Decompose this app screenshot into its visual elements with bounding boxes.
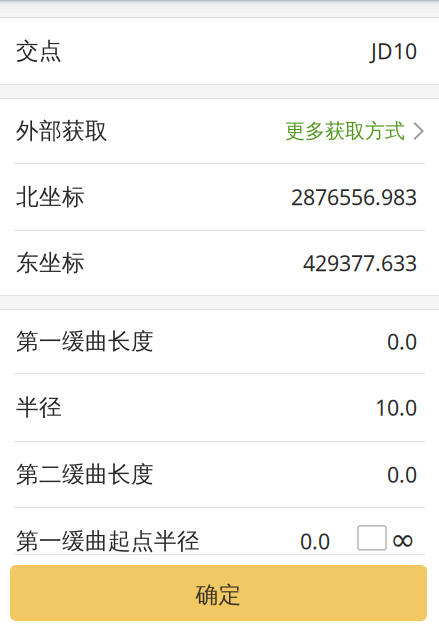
staticText: 北坐标	[16, 183, 85, 211]
button[interactable]: 半径	[0, 374, 439, 441]
staticText: 429377.633	[303, 249, 417, 277]
button[interactable]: 第一缓曲长度	[0, 310, 439, 373]
staticText: 东坐标	[16, 249, 85, 277]
staticText: 0.0	[387, 460, 417, 489]
staticText: 10.0	[375, 393, 417, 422]
staticText: 更多获取方式	[285, 119, 405, 143]
staticText: 第一缓曲起点半径	[16, 527, 200, 555]
staticText: 0.0	[300, 527, 330, 555]
button[interactable]: 外部获取	[0, 99, 439, 163]
button[interactable]: 第一缓曲起点半径	[0, 508, 330, 554]
staticText: ∞	[390, 522, 416, 557]
button[interactable]: 第二缓曲长度	[0, 442, 439, 507]
staticText: 确定	[195, 581, 241, 609]
staticText: 2876556.983	[291, 183, 417, 211]
staticText: 第二缓曲长度	[16, 461, 154, 488]
staticText: 第一缓曲长度	[16, 328, 154, 355]
staticText: 外部获取	[16, 117, 108, 145]
staticText: 交点	[16, 37, 62, 65]
button[interactable]: 北坐标	[0, 164, 439, 230]
staticText: JD10	[371, 37, 417, 65]
button[interactable]: 东坐标	[0, 231, 439, 295]
button[interactable]: 交点	[0, 18, 439, 84]
button[interactable]: 确定	[10, 565, 427, 621]
staticText: 半径	[16, 394, 62, 421]
staticText: 0.0	[387, 327, 417, 356]
button[interactable]: 无穷大	[330, 508, 439, 554]
